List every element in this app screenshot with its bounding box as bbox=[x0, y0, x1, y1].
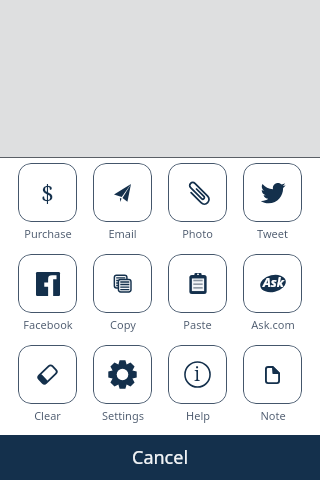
button[interactable]: Help bbox=[168, 345, 227, 404]
staticText: Note bbox=[260, 408, 286, 423]
staticText: Cancel bbox=[132, 445, 189, 470]
staticText: Clear bbox=[34, 408, 61, 423]
button[interactable]: Paste bbox=[168, 254, 227, 313]
staticText: Facebook bbox=[23, 317, 73, 332]
button[interactable]: Settings bbox=[93, 345, 152, 404]
button[interactable]: Note bbox=[243, 345, 302, 404]
button[interactable]: Photo bbox=[168, 163, 227, 222]
staticText: Tweet bbox=[257, 226, 288, 241]
staticText: Ask bbox=[263, 274, 284, 291]
staticText: Help bbox=[186, 408, 210, 423]
button[interactable]: Facebook bbox=[18, 254, 77, 313]
button[interactable]: Tweet bbox=[243, 163, 302, 222]
button[interactable]: Clear bbox=[18, 345, 77, 404]
staticText: $ bbox=[41, 177, 54, 208]
staticText: Email bbox=[108, 226, 137, 241]
staticText: Photo bbox=[182, 226, 213, 241]
button[interactable]: Email bbox=[93, 163, 152, 222]
staticText: Purchase bbox=[24, 226, 72, 241]
button[interactable]: Purchase bbox=[18, 163, 77, 222]
button[interactable]: Cancel bbox=[0, 435, 320, 480]
staticText: i bbox=[194, 361, 201, 387]
button[interactable]: Ask.com bbox=[243, 254, 302, 313]
staticText: Settings bbox=[102, 408, 144, 423]
staticText: Ask.com bbox=[251, 317, 295, 332]
button[interactable]: Copy bbox=[93, 254, 152, 313]
staticText: Paste bbox=[183, 317, 212, 332]
staticText: Copy bbox=[110, 317, 136, 332]
